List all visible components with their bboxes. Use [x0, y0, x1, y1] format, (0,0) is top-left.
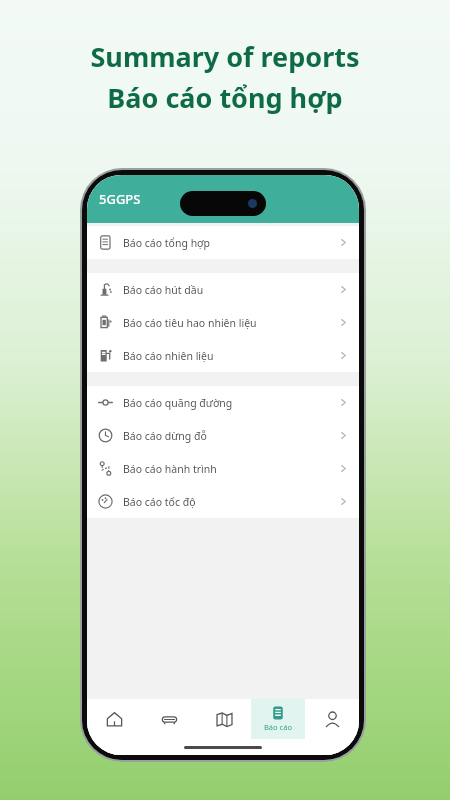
button[interactable]: Báo cáo hút dầu	[87, 273, 359, 306]
staticText: Báo cáo quãng đường	[123, 396, 233, 410]
button[interactable]: Báo cáo tổng hợp	[87, 226, 359, 259]
button[interactable]: Báo cáo tốc độ	[87, 485, 359, 518]
staticText: Summary of reports	[90, 38, 360, 75]
staticText: Báo cáo dừng đỗ	[123, 429, 207, 443]
staticText: 5GGPS	[99, 190, 141, 208]
button[interactable]: Báo cáo tiêu hao nhiên liệu	[87, 306, 359, 339]
staticText: Báo cáo tổng hợp	[107, 79, 343, 116]
button[interactable]: Báo cáo nhiên liệu	[87, 339, 359, 372]
staticText: Báo cáo hành trình	[123, 462, 217, 476]
button[interactable]: Map	[197, 699, 251, 739]
button[interactable]: Vehicles	[142, 699, 197, 739]
staticText: Báo cáo tiêu hao nhiên liệu	[123, 316, 257, 330]
button[interactable]: Báo cáo hành trình	[87, 452, 359, 485]
button[interactable]: Home	[87, 699, 142, 739]
staticText: Báo cáo	[264, 722, 292, 732]
button[interactable]: Báo cáo quãng đường	[87, 386, 359, 419]
staticText: Báo cáo tốc độ	[123, 495, 196, 509]
button[interactable]: Profile	[305, 699, 359, 739]
staticText: Báo cáo tổng hợp	[123, 236, 211, 250]
button[interactable]: Báo cáo	[251, 699, 305, 739]
staticText: Báo cáo hút dầu	[123, 283, 204, 297]
button[interactable]: Báo cáo dừng đỗ	[87, 419, 359, 452]
staticText: Báo cáo nhiên liệu	[123, 349, 214, 363]
